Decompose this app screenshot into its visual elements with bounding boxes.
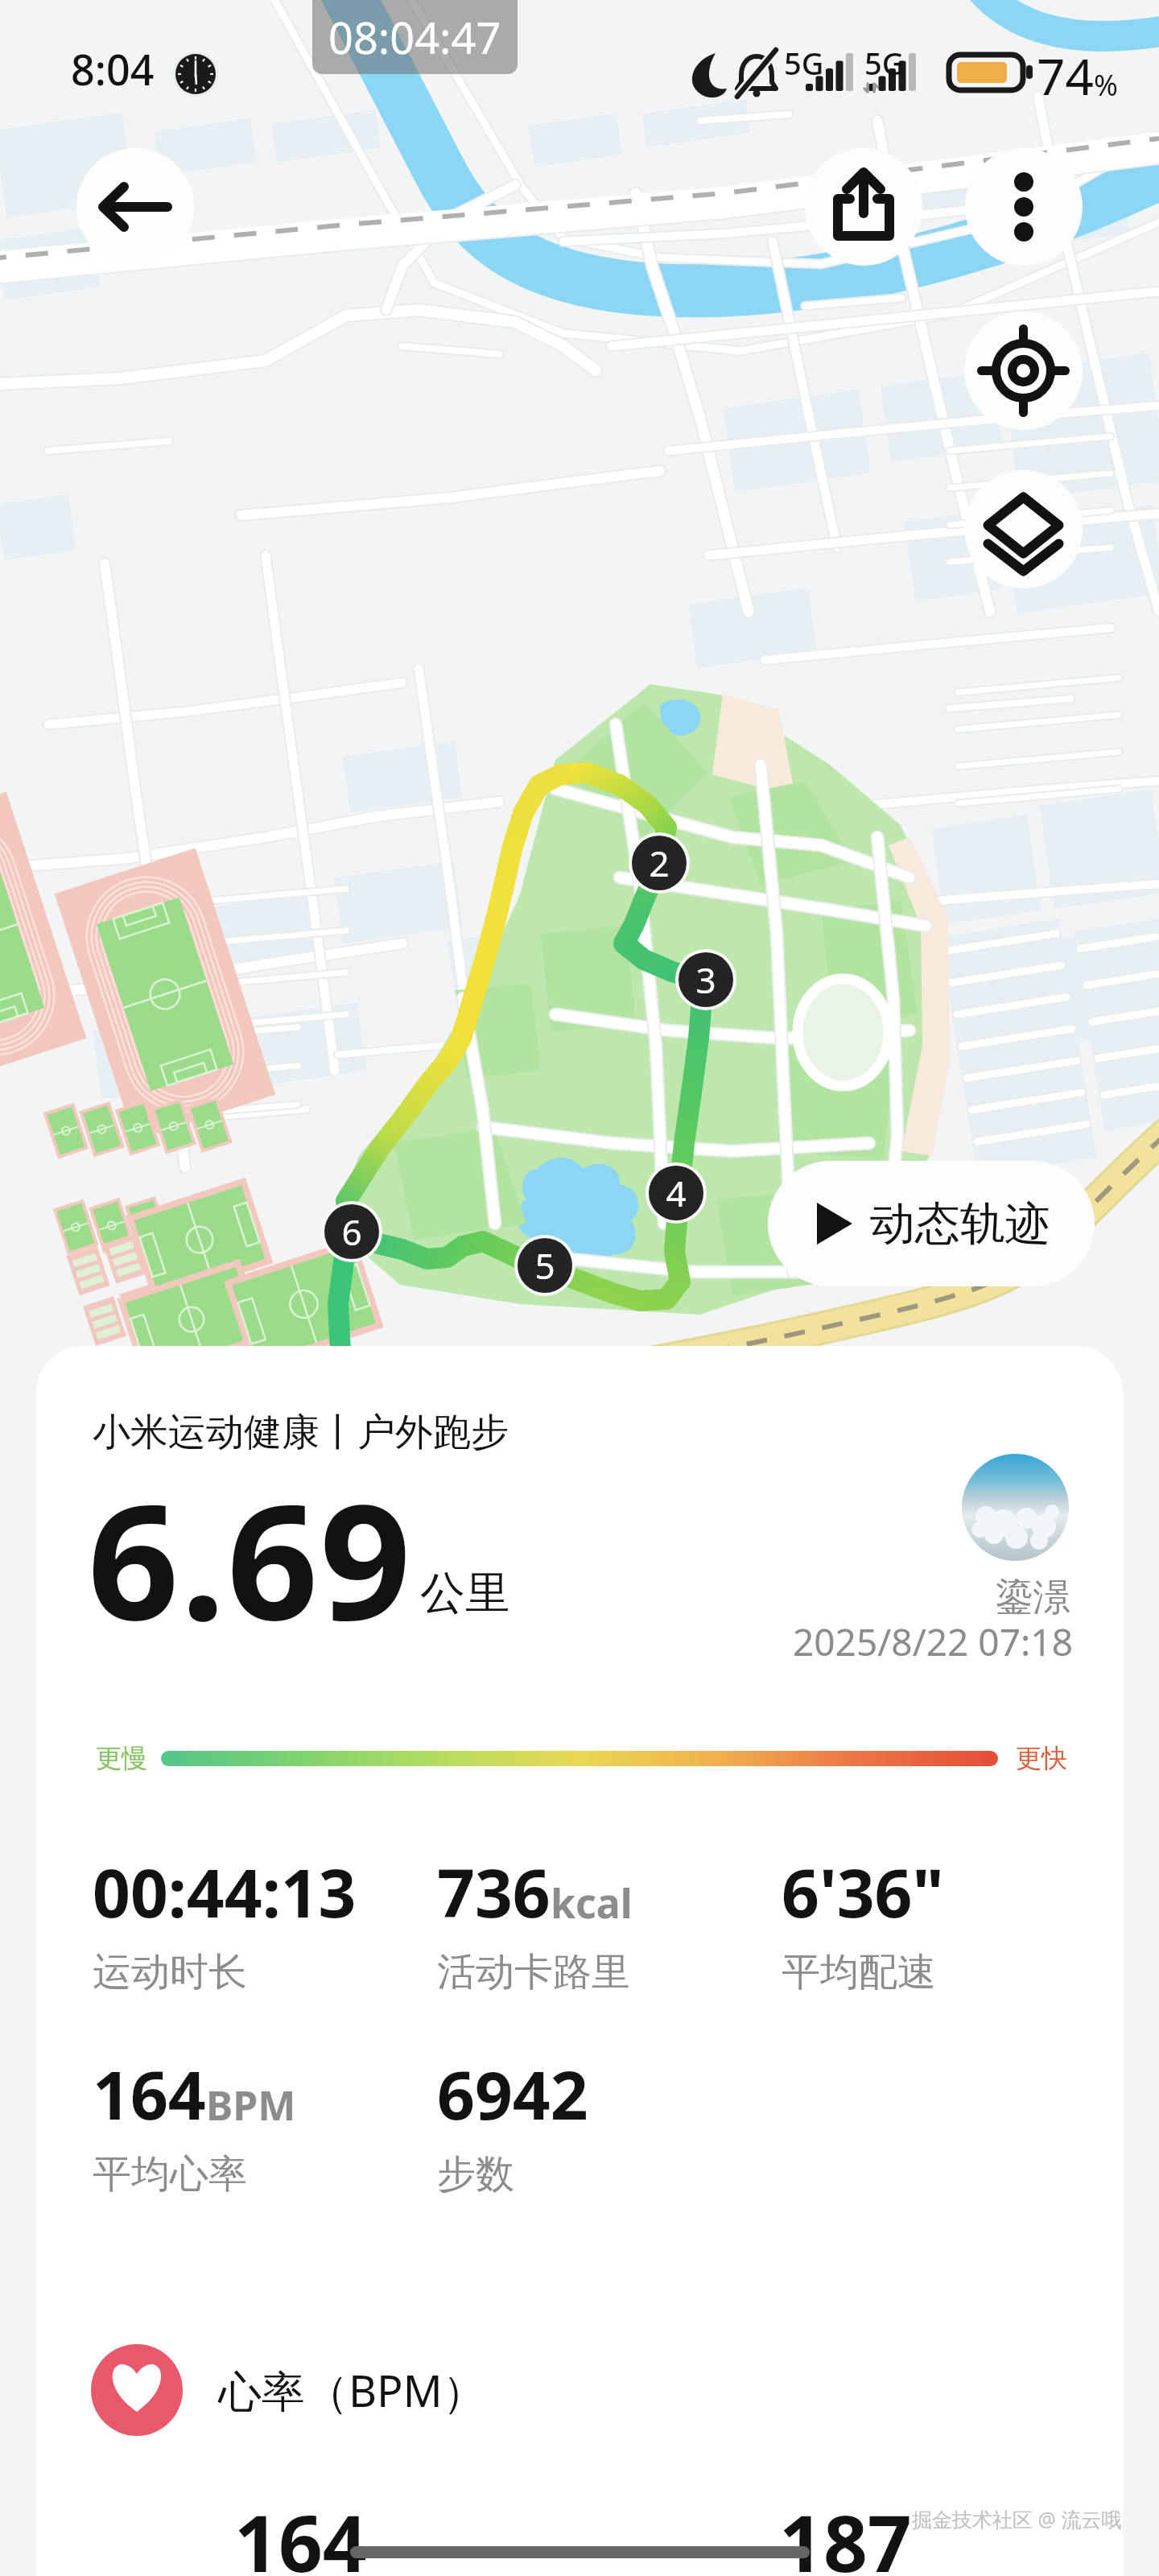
staticText: 小米运动健康丨户外跑步 xyxy=(93,1409,509,1456)
staticText: 4 xyxy=(666,1169,687,1217)
button[interactable]: 动态轨迹 xyxy=(768,1161,1095,1286)
staticText: 6'36" xyxy=(782,1847,944,1937)
staticText: % xyxy=(1094,65,1118,105)
staticText: 00:44:13 xyxy=(93,1847,357,1937)
staticText: 平均配速 xyxy=(782,1948,936,1996)
staticText: 164 xyxy=(93,2049,206,2139)
staticText: 公里 xyxy=(420,1565,510,1622)
staticText: 6 xyxy=(341,1207,362,1256)
staticText: 更慢 xyxy=(96,1742,147,1774)
staticText: 平均心率 xyxy=(93,2150,247,2198)
button[interactable]: Back xyxy=(76,148,194,266)
staticText: 6942 xyxy=(437,2049,588,2139)
staticText: 步数 xyxy=(437,2150,514,2198)
staticText: 736 xyxy=(437,1847,551,1937)
staticText: 运动时长 xyxy=(93,1948,247,1996)
staticText: 活动卡路里 xyxy=(437,1948,630,1996)
staticText: 心率（BPM） xyxy=(218,2360,486,2420)
staticText: 5G xyxy=(784,42,824,84)
staticText: 2025/8/22 07:18 xyxy=(793,1616,1073,1667)
staticText: 187 xyxy=(779,2489,912,2576)
staticText: 74 xyxy=(1037,42,1094,109)
staticText: 5G xyxy=(864,42,905,84)
staticText: 5 xyxy=(534,1241,555,1290)
staticText: 6.69 xyxy=(88,1449,413,1666)
button[interactable]: Map layers xyxy=(964,470,1083,588)
button[interactable]: My location xyxy=(964,312,1083,430)
staticText: 鎏澋 xyxy=(996,1575,1070,1621)
staticText: 掘金技术社区 @ 流云哦 xyxy=(912,2505,1122,2533)
staticText: BPM xyxy=(206,2078,296,2132)
staticText: 08:04:47 xyxy=(328,7,501,67)
button[interactable]: Share xyxy=(805,148,922,266)
staticText: 2 xyxy=(649,839,670,887)
staticText: 8:04 xyxy=(71,40,155,97)
staticText: 更快 xyxy=(1016,1742,1067,1774)
staticText: kcal xyxy=(551,1876,633,1930)
staticText: 3 xyxy=(695,956,716,1004)
button[interactable]: More options xyxy=(965,148,1083,266)
staticText: 164 xyxy=(234,2489,367,2576)
staticText: 动态轨迹 xyxy=(870,1195,1050,1253)
